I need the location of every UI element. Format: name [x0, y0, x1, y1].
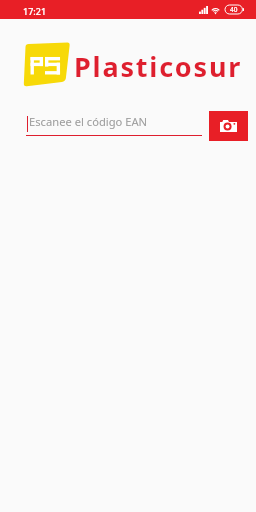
staticText: Plasticosur	[74, 48, 243, 85]
staticText: 17:21	[23, 5, 47, 17]
staticText: 40	[230, 5, 238, 14]
button[interactable]: Escanee el código EAN	[18, 110, 210, 137]
button[interactable]: Escanear código con la cámara	[209, 111, 248, 141]
staticText: Escanee el código EAN	[29, 114, 148, 129]
